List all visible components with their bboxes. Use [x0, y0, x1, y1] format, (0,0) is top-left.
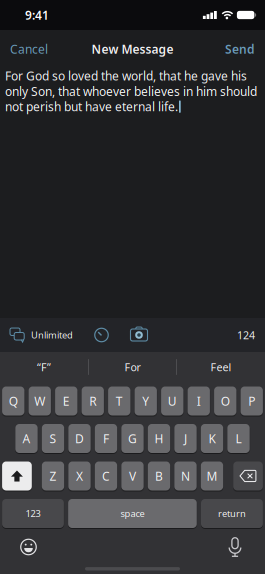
staticText: 124: [237, 328, 255, 342]
staticText: I: [197, 393, 201, 409]
button[interactable]: A: [15, 424, 38, 453]
button[interactable]: “F”: [0, 352, 88, 382]
staticText: Z: [49, 468, 56, 484]
staticText: Feel: [210, 360, 231, 374]
button[interactable]: H: [148, 424, 170, 453]
button[interactable]: P: [241, 386, 263, 415]
button[interactable]: E: [55, 386, 77, 415]
button[interactable]: Y: [135, 386, 157, 415]
button[interactable]: U: [161, 386, 183, 415]
staticText: S: [49, 430, 56, 446]
button[interactable]: X: [68, 461, 91, 490]
staticText: R: [89, 393, 96, 409]
button[interactable]: Q: [2, 386, 24, 415]
staticText: Unlimited: [31, 329, 73, 341]
staticText: 9:41: [25, 7, 49, 23]
button[interactable]: G: [121, 424, 144, 453]
staticText: M: [206, 468, 217, 484]
button[interactable]: B: [148, 461, 170, 490]
button[interactable]: D: [68, 424, 91, 453]
button[interactable]: L: [227, 424, 250, 453]
button[interactable]: [228, 538, 242, 556]
staticText: V: [129, 468, 136, 484]
staticText: W: [34, 393, 45, 409]
staticText: O: [221, 393, 230, 409]
button[interactable]: O: [214, 386, 236, 415]
button[interactable]: Cancel: [0, 41, 48, 57]
button[interactable]: Send: [225, 41, 265, 57]
button[interactable]: return: [201, 499, 263, 528]
button[interactable]: I: [188, 386, 210, 415]
staticText: space: [120, 507, 144, 520]
staticText: H: [154, 430, 163, 446]
button[interactable]: [73, 327, 109, 342]
button[interactable]: M: [201, 461, 223, 490]
staticText: For God so loved the world, that he gave…: [5, 68, 247, 84]
staticText: F: [103, 430, 109, 446]
button[interactable]: C: [95, 461, 117, 490]
button[interactable]: F: [95, 424, 117, 453]
staticText: Send: [225, 41, 255, 57]
staticText: New Message: [91, 41, 173, 57]
button[interactable]: [20, 538, 37, 555]
button[interactable]: W: [29, 386, 51, 415]
button[interactable]: Unlimited: [0, 326, 73, 343]
button[interactable]: [233, 461, 263, 490]
staticText: D: [75, 430, 84, 446]
staticText: X: [76, 468, 83, 484]
button[interactable]: J: [174, 424, 197, 453]
staticText: only Son, that whoever believes in him s…: [5, 83, 257, 99]
staticText: C: [102, 468, 110, 484]
staticText: N: [181, 468, 190, 484]
button[interactable]: For: [89, 352, 176, 382]
button[interactable]: [109, 326, 148, 344]
staticText: P: [248, 393, 255, 409]
staticText: U: [168, 393, 177, 409]
staticText: A: [22, 430, 30, 446]
staticText: For: [124, 360, 140, 374]
staticText: K: [208, 430, 215, 446]
staticText: 123: [25, 507, 40, 520]
staticText: T: [116, 393, 123, 409]
button[interactable]: V: [121, 461, 144, 490]
button[interactable]: S: [42, 424, 64, 453]
button[interactable]: N: [174, 461, 197, 490]
staticText: E: [63, 393, 70, 409]
staticText: B: [155, 468, 163, 484]
button[interactable]: 123: [2, 499, 64, 528]
staticText: G: [128, 430, 137, 446]
button[interactable]: Feel: [177, 352, 265, 382]
staticText: not perish but have eternal life.: [5, 99, 178, 115]
button[interactable]: Z: [42, 461, 64, 490]
staticText: “F”: [37, 360, 51, 374]
staticText: return: [218, 507, 246, 520]
button[interactable]: [2, 461, 32, 490]
staticText: L: [235, 430, 241, 446]
button[interactable]: R: [82, 386, 104, 415]
staticText: J: [184, 430, 187, 446]
staticText: Cancel: [10, 41, 48, 57]
staticText: Y: [142, 393, 149, 409]
button[interactable]: space: [68, 499, 197, 528]
button[interactable]: K: [201, 424, 223, 453]
button[interactable]: T: [108, 386, 130, 415]
staticText: Q: [9, 393, 18, 409]
